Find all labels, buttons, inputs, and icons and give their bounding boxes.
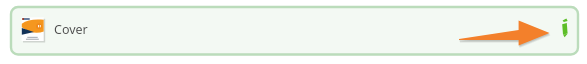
button[interactable]: Edit [556,15,578,47]
button[interactable]: Cover [0,0,587,64]
staticText: Cover [54,21,88,38]
